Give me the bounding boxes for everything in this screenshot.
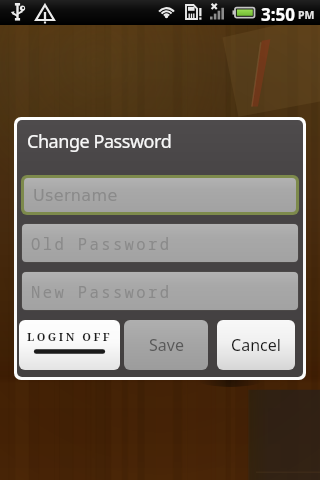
staticText: Cancel — [231, 334, 281, 356]
staticText: Old Password — [31, 233, 172, 254]
other: No signal — [209, 3, 227, 21]
staticText: Save — [149, 334, 184, 356]
other: Battery — [232, 7, 256, 19]
staticText: Change Password — [27, 129, 172, 154]
button[interactable]: LOGIN OFF — [19, 320, 120, 370]
other: USB connected — [12, 3, 26, 22]
button[interactable]: Old Password — [22, 224, 298, 262]
other: SD card — [185, 4, 203, 21]
other: Warning — [35, 4, 55, 23]
staticText: 3:50 — [261, 3, 295, 26]
staticText: PM — [298, 8, 315, 22]
staticText: New Password — [31, 281, 172, 302]
button[interactable]: Save — [124, 320, 208, 370]
button[interactable]: Cancel — [217, 320, 295, 370]
staticText: LOGIN OFF — [27, 329, 113, 344]
other: Wi-Fi — [158, 5, 175, 19]
staticText: Username — [33, 186, 118, 205]
button[interactable]: New Password — [22, 272, 298, 310]
button[interactable]: Username — [24, 178, 296, 212]
